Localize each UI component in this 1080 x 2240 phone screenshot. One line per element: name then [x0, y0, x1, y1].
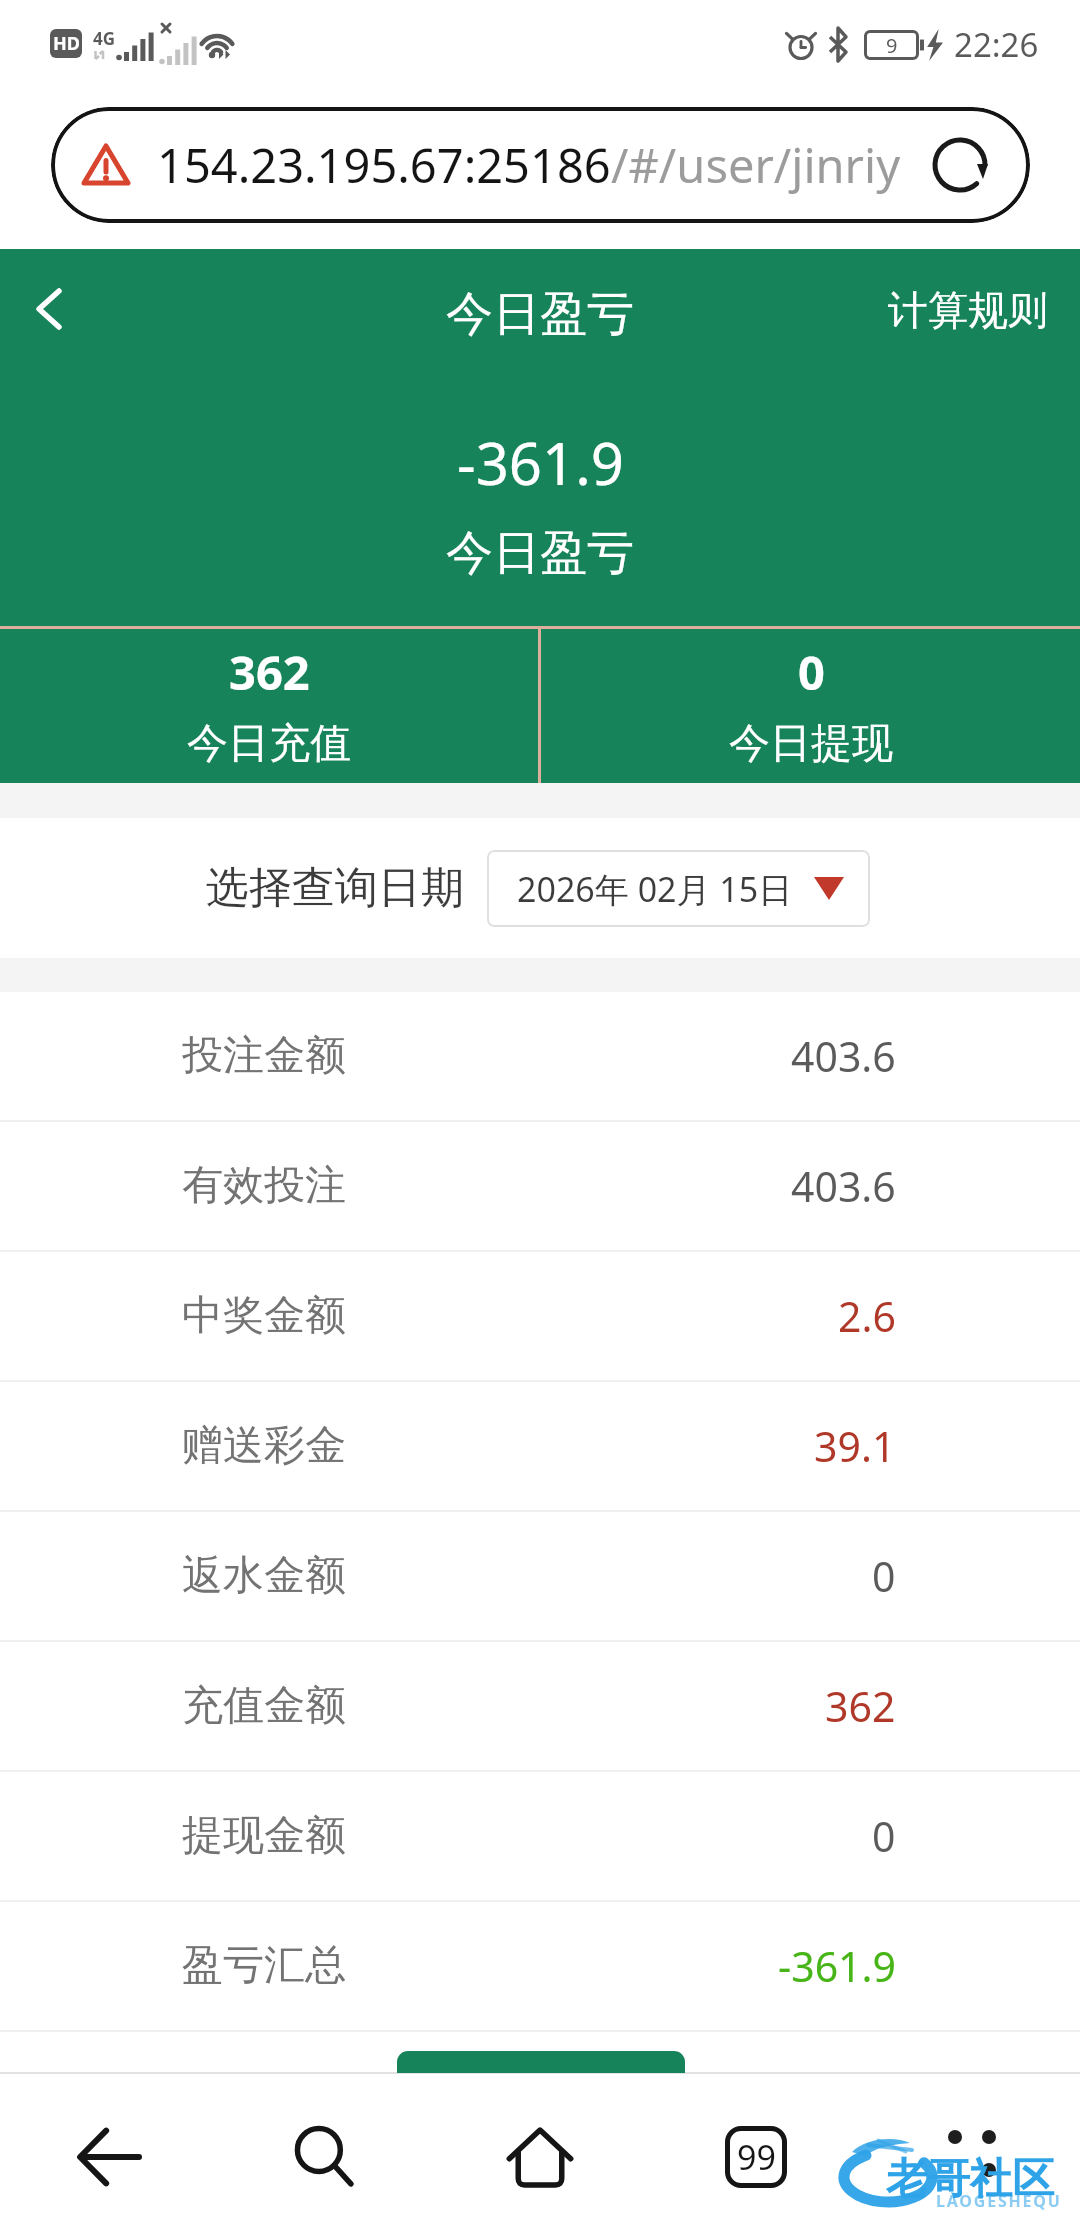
staticText: 选择查询日期 — [206, 861, 464, 915]
button[interactable]: 返水金额 — [0, 1512, 1080, 1640]
staticText: 0 — [872, 1548, 896, 1604]
button[interactable]: 中奖金额 — [0, 1252, 1080, 1380]
button[interactable]: 计算规则 — [864, 271, 1080, 349]
staticText: 39.1 — [814, 1418, 896, 1474]
button[interactable]: 154.23.195.67:25186 — [51, 107, 1030, 223]
staticText: 今日盈亏 — [446, 524, 634, 583]
button[interactable]: Tabs — [648, 2074, 864, 2240]
button[interactable]: 盈亏汇总 — [0, 1902, 1080, 2030]
staticText: 9 — [886, 32, 898, 59]
staticText: 计算规则 — [888, 285, 1048, 335]
staticText: 0 — [798, 640, 825, 704]
staticText: 22:26 — [954, 22, 1039, 67]
button[interactable]: Search — [216, 2074, 432, 2240]
staticText: 362 — [229, 640, 310, 704]
staticText: 老哥社区 — [886, 2153, 1054, 2206]
button[interactable]: Back — [10, 270, 88, 348]
staticText: 99 — [737, 2134, 776, 2180]
staticText: HD — [53, 31, 80, 56]
staticText: /#/user/jinriy — [611, 133, 901, 197]
staticText: 提现金额 — [182, 1810, 346, 1862]
button[interactable]: 2026年 02月 15日 — [487, 850, 870, 927]
button[interactable]: 0 — [541, 629, 1080, 783]
button[interactable]: 有效投注 — [0, 1122, 1080, 1250]
staticText: 4G — [93, 27, 116, 50]
button[interactable]: 投注金额 — [0, 992, 1080, 1120]
button[interactable]: More options — [864, 2074, 1080, 2240]
staticText: 362 — [825, 1678, 896, 1734]
staticText: 赠送彩金 — [182, 1420, 346, 1472]
staticText: 中奖金额 — [182, 1290, 346, 1342]
staticText: 返水金额 — [182, 1550, 346, 1602]
staticText: 2026年 02月 15日 — [517, 866, 793, 912]
staticText: 0 — [872, 1808, 896, 1864]
staticText: 403.6 — [791, 1028, 896, 1084]
staticText: -361.9 — [457, 423, 624, 502]
button[interactable]: 提现金额 — [0, 1772, 1080, 1900]
staticText: 154.23.195.67:25186 — [157, 133, 611, 197]
staticText: 充值金额 — [182, 1680, 346, 1732]
staticText: 今日提现 — [729, 718, 893, 770]
staticText: 今日充值 — [187, 718, 351, 770]
button[interactable]: Reload — [924, 129, 996, 201]
staticText: 盈亏汇总 — [182, 1940, 346, 1992]
staticText: 有效投注 — [182, 1160, 346, 1212]
staticText: LAOGESHEQU — [936, 2190, 1062, 2212]
staticText: 2.6 — [838, 1288, 896, 1344]
button[interactable]: 362 — [0, 629, 538, 783]
staticText: 投注金额 — [182, 1030, 346, 1082]
staticText: 今日盈亏 — [446, 285, 634, 344]
button[interactable]: 赠送彩金 — [0, 1382, 1080, 1510]
button[interactable]: 充值金额 — [0, 1642, 1080, 1770]
staticText: -361.9 — [778, 1938, 896, 1994]
button[interactable]: Home — [432, 2074, 648, 2240]
button[interactable]: Back — [0, 2074, 216, 2240]
staticText: 403.6 — [791, 1158, 896, 1214]
